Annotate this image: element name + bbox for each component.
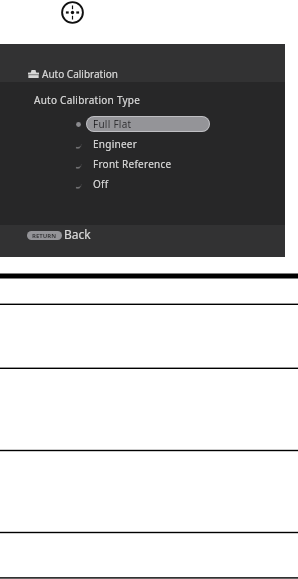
staticText: Off (93, 177, 109, 191)
button[interactable]: Front Reference (0, 154, 285, 174)
staticText: Full Flat (93, 117, 132, 131)
staticText: Back (64, 226, 91, 242)
button[interactable]: RETURN (0, 225, 285, 257)
staticText: Engineer (93, 137, 138, 151)
button[interactable]: Off (0, 174, 285, 194)
button[interactable]: Full Flat (0, 114, 285, 134)
staticText: Front Reference (93, 157, 172, 171)
staticText: Auto Calibration (42, 67, 119, 81)
button[interactable]: Target (61, 1, 84, 24)
button[interactable]: Engineer (0, 134, 285, 154)
staticText: Auto Calibration Type (34, 93, 141, 107)
staticText: RETURN (32, 232, 57, 240)
button[interactable]: Auto Calibration (0, 44, 285, 82)
